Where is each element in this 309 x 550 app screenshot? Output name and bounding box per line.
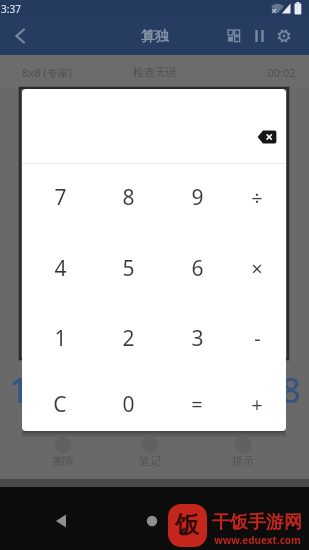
button[interactable]: 提示 [215,453,271,469]
staticText: 9 [191,183,204,212]
button[interactable]: - [228,309,286,367]
staticText: 4 [54,254,67,283]
button[interactable]: 7 [31,168,89,226]
button[interactable]: 擦除 [35,453,91,469]
staticText: 00:02 [267,65,296,80]
button[interactable]: 1 [31,309,89,367]
button[interactable]: 3 [168,309,226,367]
staticText: 8x8 (专家) [22,65,72,80]
button[interactable]: 9 [168,168,226,226]
staticText: 7 [54,183,67,212]
button[interactable] [248,118,286,156]
button[interactable] [222,24,246,48]
button[interactable]: 8 [99,168,157,226]
button[interactable]: ÷ [228,168,286,226]
staticText: 0 [122,390,135,419]
button[interactable]: 6 [168,239,226,297]
button[interactable]: 4 [31,239,89,297]
staticText: 8 [281,367,301,411]
button[interactable] [247,24,271,48]
staticText: × [251,255,263,282]
staticText: + [251,391,263,418]
button[interactable] [134,503,170,539]
staticText: 5 [122,254,135,283]
button[interactable] [44,503,80,539]
button[interactable]: 5 [99,239,157,297]
staticText: 算独 [141,28,169,46]
staticText: 6 [191,254,204,283]
staticText: 饭 [175,510,199,540]
staticText: 笔记 [139,454,161,468]
staticText: www.eduext.com [214,533,301,547]
staticText: 8 [122,183,135,212]
staticText: - [254,325,261,352]
staticText: = [191,391,203,418]
staticText: 提示 [232,454,254,468]
staticText: 2 [122,324,135,353]
button[interactable]: + [228,375,286,431]
button[interactable]: 0 [99,375,157,431]
staticText: 擦除 [52,454,74,468]
staticText: 1 [54,324,67,353]
staticText: 干饭手游网 [212,511,302,534]
staticText: 3 [191,324,204,353]
button[interactable]: = [168,375,226,431]
staticText: ÷ [251,184,263,211]
button[interactable]: C [31,375,89,431]
button[interactable]: 笔记 [122,453,178,469]
button[interactable] [4,20,36,52]
staticText: C [53,390,67,419]
staticText: 3:37 [1,2,21,16]
button[interactable] [272,24,296,48]
staticText: 检查无误 [133,65,177,79]
button[interactable]: 2 [99,309,157,367]
staticText: 1 [9,367,29,411]
button[interactable]: × [228,239,286,297]
